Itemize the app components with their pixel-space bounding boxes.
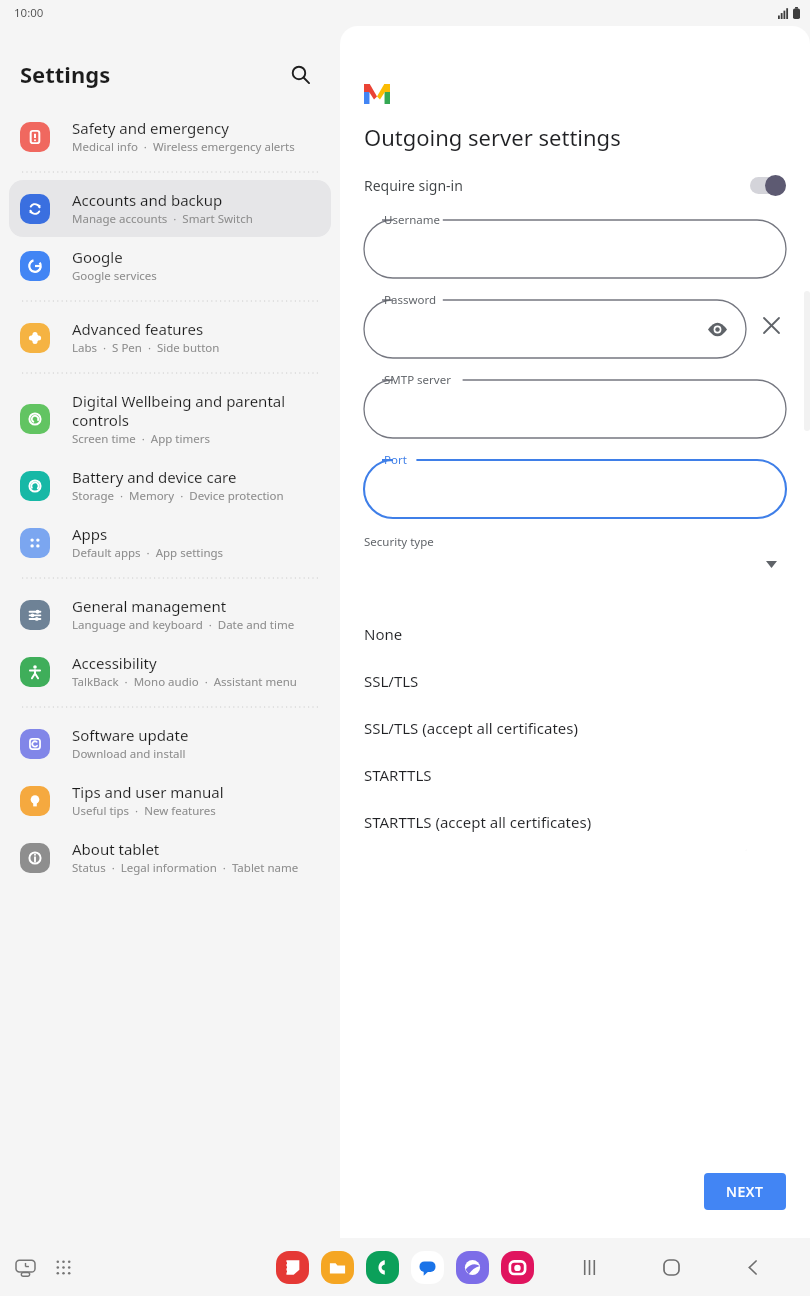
button[interactable]: Advanced features (9, 309, 331, 366)
staticText: General management (72, 596, 227, 616)
staticText: Medical info · Wireless emergency alerts (72, 139, 295, 155)
button[interactable]: Recent apps (8, 1250, 42, 1284)
button[interactable]: Back (736, 1250, 770, 1284)
button[interactable]: Clear password (756, 310, 786, 340)
staticText: Labs · S Pen · Side button (72, 340, 220, 356)
button[interactable]: Show password (702, 314, 732, 344)
staticText: Default apps · App settings (72, 545, 224, 561)
staticText: STARTTLS (364, 765, 432, 785)
button[interactable]: Phone (366, 1251, 399, 1284)
staticText: Google (72, 247, 123, 267)
staticText: Status · Legal information · Tablet name (72, 860, 299, 876)
staticText: SSL/TLS (accept all certificates) (364, 718, 578, 738)
button[interactable]: Accounts and backup (9, 180, 331, 237)
button[interactable]: Security type dropdown (756, 549, 786, 579)
button[interactable]: Battery and device care (9, 457, 331, 514)
button[interactable]: Google (9, 237, 331, 294)
button[interactable]: Digital Wellbeing and parental controls (9, 381, 331, 457)
button[interactable]: Internet (456, 1251, 489, 1284)
staticText: Accounts and backup (72, 190, 223, 210)
button[interactable]: Require sign-in (364, 174, 786, 196)
button[interactable]: Messages (411, 1251, 444, 1284)
staticText: Screen time · App timers (72, 431, 210, 447)
staticText: Storage · Memory · Device protection (72, 488, 284, 504)
staticText: TalkBack · Mono audio · Assistant menu (72, 674, 297, 690)
button[interactable]: Samsung Notes (276, 1251, 309, 1284)
button[interactable]: General management (9, 586, 331, 643)
button[interactable]: About tablet (9, 829, 331, 886)
button[interactable]: All apps (46, 1250, 80, 1284)
button[interactable]: NEXT (704, 1173, 786, 1210)
button[interactable]: Safety and emergency (9, 108, 331, 165)
button[interactable]: Camera (501, 1251, 534, 1284)
button[interactable]: Accessibility (9, 643, 331, 700)
button[interactable]: STARTTLS (355, 751, 747, 798)
button[interactable]: STARTTLS (accept all certificates) (355, 798, 747, 845)
staticText: Download and install (72, 746, 186, 762)
button[interactable]: Tips and user manual (9, 772, 331, 829)
staticText: SSL/TLS (364, 671, 419, 691)
button[interactable]: SSL/TLS (355, 657, 747, 704)
staticText: Password (384, 292, 437, 308)
staticText: Digital Wellbeing and parental controls (72, 391, 320, 430)
staticText: Software update (72, 725, 189, 745)
button[interactable]: Search (280, 54, 320, 94)
button[interactable]: None (355, 610, 747, 657)
staticText: Outgoing server settings (364, 122, 621, 152)
staticText: None (364, 624, 403, 644)
staticText: 10:00 (14, 5, 44, 21)
staticText: Username (384, 212, 440, 228)
button[interactable]: Apps (9, 514, 331, 571)
staticText: Advanced features (72, 319, 204, 339)
staticText: Accessibility (72, 653, 157, 673)
button[interactable]: Home (654, 1250, 688, 1284)
staticText: Google services (72, 268, 157, 284)
button[interactable]: My Files (321, 1251, 354, 1284)
staticText: Battery and device care (72, 467, 237, 487)
button[interactable]: SSL/TLS (accept all certificates) (355, 704, 747, 751)
button[interactable]: Software update (9, 715, 331, 772)
button[interactable]: Recents (572, 1250, 606, 1284)
staticText: Manage accounts · Smart Switch (72, 211, 253, 227)
staticText: Port (384, 452, 407, 468)
staticText: About tablet (72, 839, 160, 859)
staticText: SMTP server (384, 372, 451, 388)
staticText: Apps (72, 524, 108, 544)
staticText: Security type (364, 534, 434, 550)
staticText: Settings (20, 59, 111, 89)
staticText: STARTTLS (accept all certificates) (364, 812, 592, 832)
staticText: Language and keyboard · Date and time (72, 617, 295, 633)
staticText: Require sign-in (364, 176, 463, 195)
staticText: NEXT (726, 1182, 764, 1201)
staticText: Safety and emergency (72, 118, 229, 138)
staticText: Tips and user manual (72, 782, 224, 802)
staticText: Useful tips · New features (72, 803, 216, 819)
